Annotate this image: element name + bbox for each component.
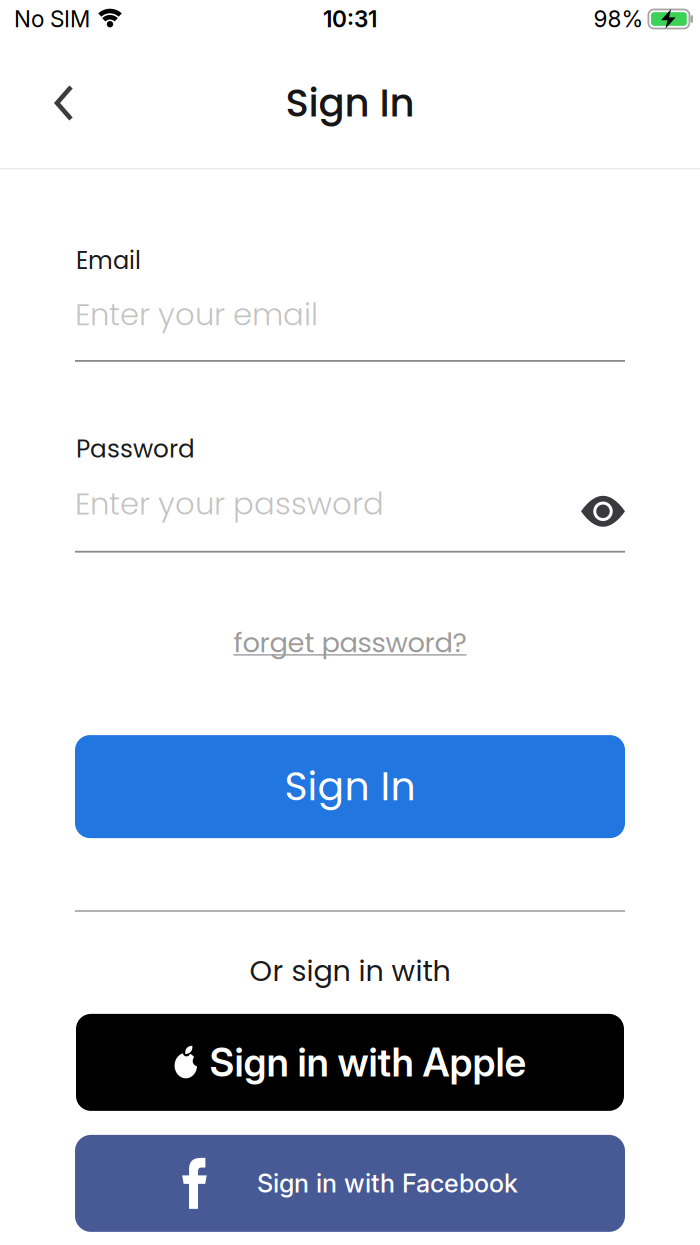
staticText: No SIM xyxy=(14,5,90,33)
staticText: Sign in with Apple xyxy=(209,1039,526,1086)
staticText: Enter your email xyxy=(75,293,318,336)
button[interactable]: Show password xyxy=(581,488,625,519)
button[interactable]: Sign In xyxy=(75,735,625,838)
button[interactable]: Sign in with Facebook xyxy=(75,1135,625,1232)
staticText: Or sign in with xyxy=(249,951,450,991)
staticText: Enter your password xyxy=(75,482,384,525)
staticText: Sign in with Facebook xyxy=(257,1168,518,1199)
staticText: Email xyxy=(76,244,141,277)
staticText: forget password? xyxy=(233,623,466,662)
staticText: Password xyxy=(76,431,195,466)
button[interactable]: Sign in with Apple xyxy=(76,1014,624,1111)
button[interactable]: forget password? xyxy=(233,621,466,665)
staticText: 10:31 xyxy=(323,5,377,33)
staticText: Sign In xyxy=(284,759,415,814)
staticText: 98% xyxy=(593,5,643,33)
staticText: Sign In xyxy=(285,76,414,130)
button[interactable]: Back xyxy=(0,76,74,129)
